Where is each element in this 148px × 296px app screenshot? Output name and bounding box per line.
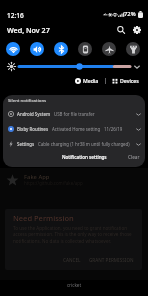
button[interactable]: Flashlight — [126, 42, 140, 56]
button[interactable]: Wi-Fi — [6, 42, 20, 56]
button[interactable]: Expand brightness — [131, 61, 142, 72]
button[interactable]: Clear — [126, 152, 142, 162]
staticText: 12:16 — [7, 11, 24, 20]
button[interactable]: Auto rotate — [78, 42, 92, 56]
button[interactable]: GRANT PERMISSION — [87, 256, 136, 264]
button[interactable]: Search — [114, 23, 127, 36]
button[interactable]: Android System — [3, 107, 145, 121]
staticText: Activated Home setting — [52, 126, 101, 132]
staticText: Media — [83, 77, 99, 84]
staticText: Bixby Routines — [17, 126, 49, 132]
button[interactable]: Brightness — [19, 61, 130, 72]
staticText: Notification settings — [62, 154, 107, 160]
staticText: 72% — [124, 10, 136, 18]
button[interactable]: Bluetooth — [54, 42, 68, 56]
staticText: USB for file transfer — [54, 111, 95, 117]
staticText: https://github.com/fake/app — [24, 180, 83, 186]
button[interactable]: CANCEL — [61, 256, 83, 264]
button[interactable]: Settings — [3, 137, 145, 151]
button[interactable]: Sound — [30, 42, 44, 56]
staticText: Need Permission — [13, 213, 74, 223]
staticText: Wed, Nov 27 — [7, 25, 50, 35]
staticText: Devices — [120, 77, 139, 84]
staticText: Fake App — [24, 173, 50, 181]
button[interactable]: Airplane mode — [102, 42, 116, 56]
button[interactable]: Settings — [130, 23, 143, 36]
staticText: Silent notifications — [8, 97, 47, 103]
staticText: Android System — [17, 111, 51, 117]
staticText: cricket — [0, 282, 148, 288]
staticText: 11/26/19 — [104, 126, 123, 132]
button[interactable]: Bixby Routines — [3, 122, 145, 136]
button[interactable]: Notification settings — [60, 152, 109, 162]
staticText: GRANT PERMISSION — [89, 257, 134, 263]
staticText: To use the Application, you need to gran… — [13, 225, 137, 245]
button[interactable]: Media — [73, 76, 101, 85]
staticText: Settings — [17, 141, 35, 147]
staticText: Cable charging (1 hr38 m until fully cha… — [38, 141, 130, 147]
staticText: CANCEL — [63, 257, 81, 263]
button[interactable]: Devices — [110, 76, 141, 85]
staticText: Clear — [128, 154, 140, 160]
